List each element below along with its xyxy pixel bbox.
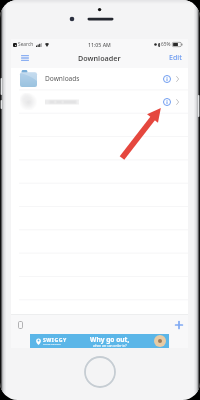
staticText: 65%	[161, 41, 171, 48]
staticText: FASTER DELIVERY	[43, 343, 61, 346]
staticText: Why go out,	[90, 335, 130, 344]
staticText: when we can order in?	[93, 344, 127, 348]
button[interactable]: Device	[14, 318, 27, 331]
staticText: SWIGGY	[43, 336, 67, 343]
button[interactable]: Menu	[18, 51, 31, 64]
button[interactable]: Info	[11, 90, 188, 113]
staticText: 11:05 AM	[88, 41, 111, 48]
button[interactable]: Downloads	[11, 67, 188, 90]
staticText: Downloader	[78, 53, 121, 63]
staticText: Edit	[169, 53, 182, 63]
button[interactable]: Info	[161, 73, 172, 84]
staticText: Search	[18, 41, 34, 48]
button[interactable]: Info	[161, 96, 172, 107]
staticText: Downloads	[45, 74, 80, 83]
button[interactable]: SWIGGY	[30, 334, 169, 348]
button[interactable]: Edit	[167, 51, 184, 65]
button[interactable]: Add	[172, 318, 185, 331]
